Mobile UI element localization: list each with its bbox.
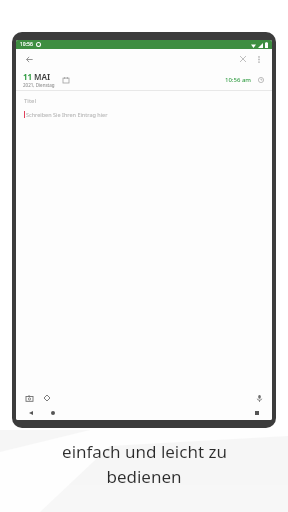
button[interactable]: Weitere Optionen xyxy=(253,53,265,65)
staticText: Titel xyxy=(24,97,36,105)
staticText: 11 xyxy=(23,71,33,82)
staticText: 10:56 am xyxy=(225,76,252,84)
staticText: 2021, Dienstag xyxy=(23,82,55,88)
button[interactable]: Zurück xyxy=(23,53,35,65)
button[interactable]: 11 xyxy=(23,71,71,88)
staticText: bedienen xyxy=(106,465,182,488)
staticText: MAI xyxy=(34,71,51,82)
button[interactable]: Titel xyxy=(24,97,264,118)
button[interactable]: 10:56 am xyxy=(225,75,265,84)
other: Erinnerung xyxy=(256,75,265,84)
staticText: einfach und leicht zu xyxy=(62,440,227,463)
button[interactable]: Startbildschirm xyxy=(47,407,59,419)
button[interactable]: Anhang hinzufügen xyxy=(41,392,53,404)
other: Kalender xyxy=(61,75,71,85)
button[interactable]: Foto aufnehmen xyxy=(23,392,35,404)
button[interactable]: Schließen xyxy=(237,53,249,65)
button[interactable]: Übersicht xyxy=(251,407,263,419)
button[interactable]: Spracheingabe xyxy=(253,392,265,404)
staticText: Schreiben Sie Ihren Eintrag hier xyxy=(26,111,108,118)
staticText: 10:56 xyxy=(20,41,33,48)
button[interactable]: Zurück xyxy=(25,407,37,419)
